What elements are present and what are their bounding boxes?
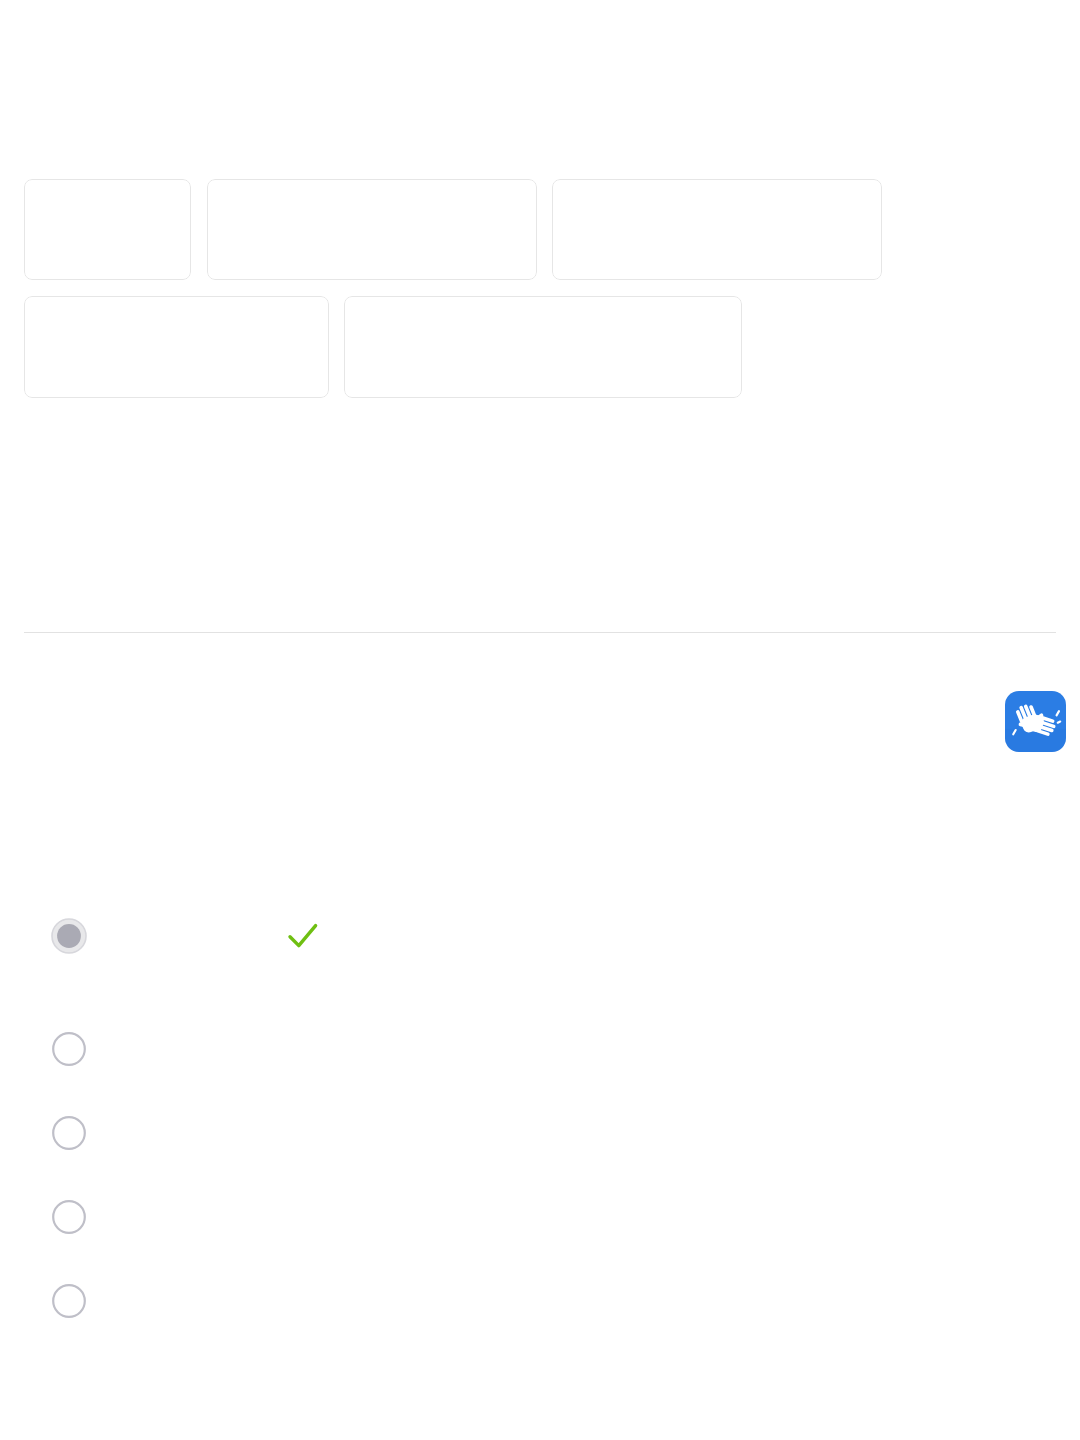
button[interactable] xyxy=(207,179,537,280)
button[interactable] xyxy=(24,296,329,398)
button[interactable]: Selected option xyxy=(51,918,87,954)
other: Correct xyxy=(282,916,322,956)
button[interactable] xyxy=(344,296,742,398)
button[interactable]: Option xyxy=(51,1283,87,1319)
button[interactable]: Option xyxy=(51,1031,87,1067)
button[interactable] xyxy=(552,179,882,280)
button[interactable]: Option xyxy=(51,1199,87,1235)
button[interactable]: Sign language interpretation xyxy=(1005,691,1066,752)
button[interactable]: Option xyxy=(51,1115,87,1151)
button[interactable] xyxy=(24,179,191,280)
